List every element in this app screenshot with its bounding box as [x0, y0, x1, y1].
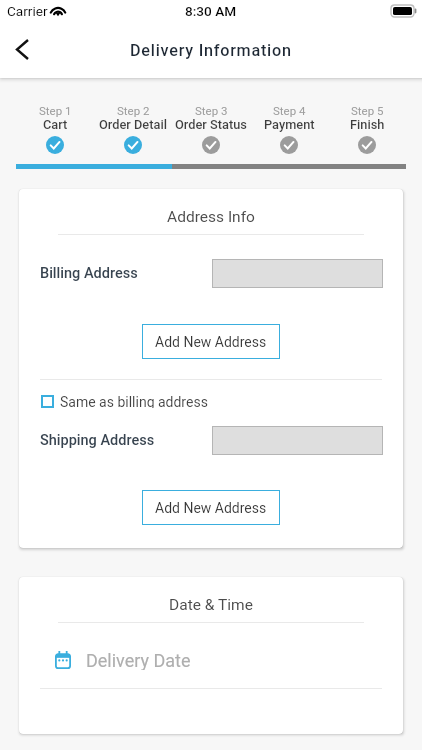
button[interactable]: Step 2 [94, 104, 172, 154]
staticText: Step 4 [273, 104, 306, 117]
staticText: Cart [43, 117, 68, 132]
button[interactable]: Same as billing address [40, 394, 403, 408]
staticText: Shipping Address [40, 432, 155, 449]
button[interactable]: Back [5, 32, 39, 66]
staticText: Add New Address [155, 500, 267, 516]
button[interactable]: Step 3 [172, 104, 250, 154]
staticText: Finish [350, 117, 385, 132]
staticText: Step 3 [195, 104, 228, 117]
button[interactable]: Add New Address [142, 324, 280, 359]
staticText: Order Detail [99, 117, 167, 132]
staticText: Date & Time [19, 596, 403, 614]
staticText: Step 5 [351, 104, 384, 117]
staticText: Step 1 [39, 104, 72, 117]
staticText: 8:30 AM [185, 3, 237, 19]
staticText: Same as billing address [60, 394, 208, 408]
staticText: Add New Address [155, 334, 267, 350]
button[interactable]: Billing Address [212, 259, 383, 288]
staticText: Step 2 [117, 104, 150, 117]
button[interactable]: Step 1 [16, 104, 94, 154]
button[interactable]: Shipping Address [212, 426, 383, 455]
staticText: Billing Address [40, 265, 138, 282]
staticText: Delivery Information [130, 41, 292, 60]
staticText: Carrier [7, 3, 48, 19]
staticText: Payment [264, 117, 315, 132]
staticText: Order Status [175, 117, 247, 132]
button[interactable]: Add New Address [142, 490, 280, 525]
staticText: Delivery Date [86, 650, 191, 670]
button[interactable]: Step 5 [328, 104, 406, 154]
button[interactable]: Step 4 [250, 104, 328, 154]
button[interactable]: Delivery Date [40, 650, 382, 670]
staticText: Address Info [19, 208, 403, 226]
